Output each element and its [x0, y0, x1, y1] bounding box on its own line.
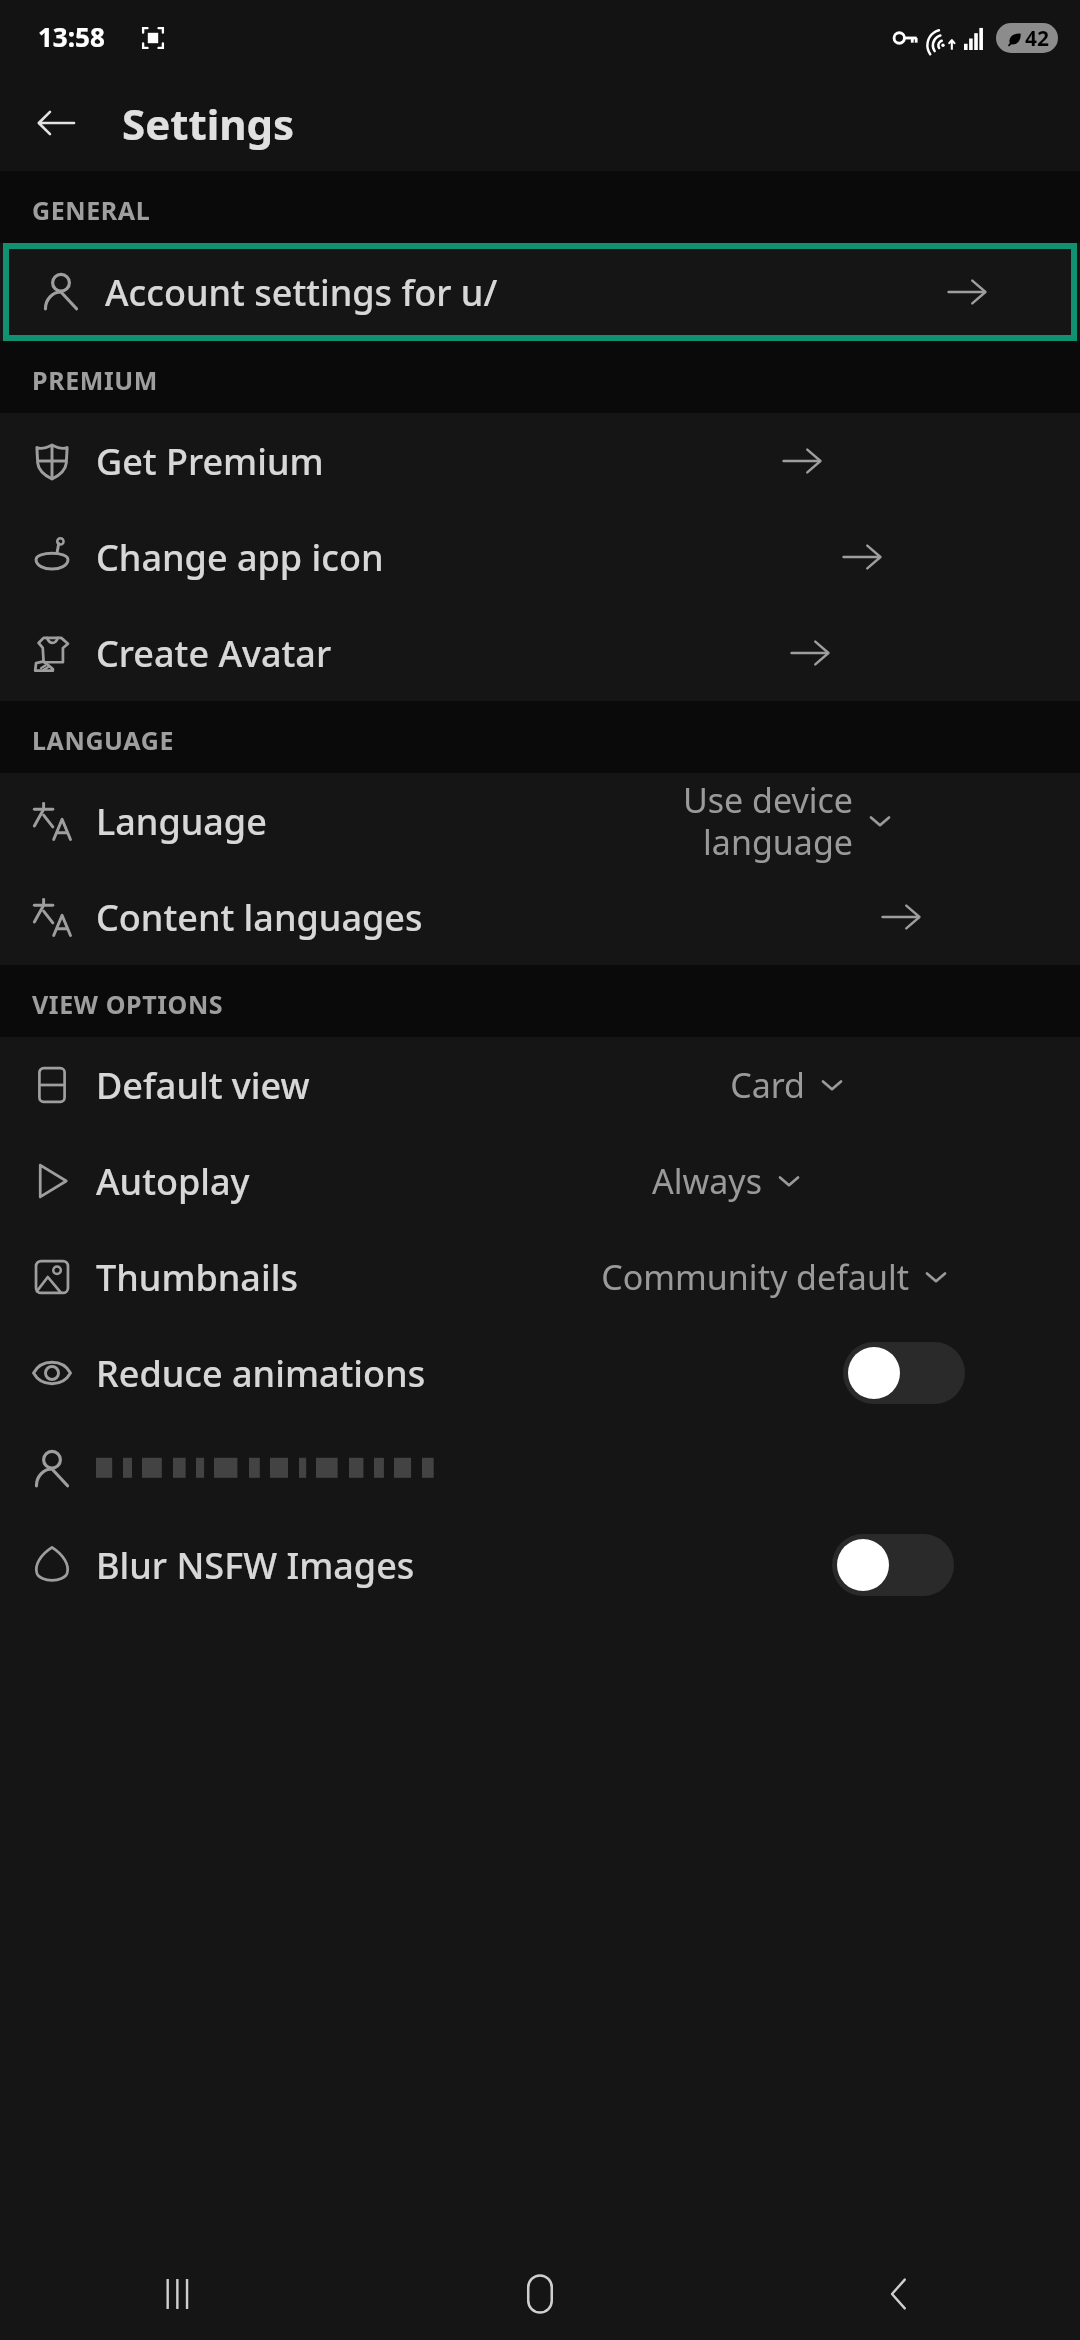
staticText: 42: [1025, 24, 1050, 53]
staticText: Content languages: [96, 893, 423, 942]
staticText: Reduce animations: [96, 1349, 426, 1398]
staticText: Autoplay: [96, 1157, 250, 1206]
staticText: Default view: [96, 1061, 310, 1110]
staticText: VIEW OPTIONS: [32, 987, 224, 1021]
button[interactable]: Get Premium: [0, 413, 1080, 509]
button[interactable]: Content languages: [0, 869, 1080, 965]
button[interactable]: Back: [26, 93, 86, 153]
button[interactable]: Home: [495, 2249, 585, 2339]
staticText: Language: [96, 797, 267, 846]
staticText: Use device language: [595, 777, 853, 865]
button[interactable]: Account settings for u/: [9, 249, 1071, 335]
button[interactable]: Recents: [135, 2249, 225, 2339]
button[interactable]: Toggle: [843, 1342, 965, 1404]
staticText: PREMIUM: [32, 363, 158, 397]
button[interactable]: Language: [0, 773, 1080, 869]
staticText: Settings: [122, 95, 295, 152]
button[interactable]: Reduce animations: [0, 1325, 1080, 1421]
button[interactable]: Autoplay: [0, 1133, 1080, 1229]
staticText: Thumbnails: [96, 1253, 298, 1302]
button[interactable]: Default view: [0, 1037, 1080, 1133]
staticText: Community default: [601, 1254, 909, 1300]
button[interactable]: Blur NSFW Images: [0, 1517, 1080, 1613]
staticText: Blur NSFW Images: [96, 1541, 415, 1590]
button[interactable]: Back: [855, 2249, 945, 2339]
button[interactable]: Create Avatar: [0, 605, 1080, 701]
staticText: Always: [652, 1158, 762, 1204]
staticText: Change app icon: [96, 533, 384, 582]
button[interactable]: Toggle: [832, 1534, 954, 1596]
button[interactable]: [0, 1421, 1080, 1517]
staticText: GENERAL: [32, 193, 151, 227]
staticText: Get Premium: [96, 437, 324, 486]
button[interactable]: Thumbnails: [0, 1229, 1080, 1325]
staticText: Create Avatar: [96, 629, 332, 678]
staticText: Card: [730, 1062, 805, 1108]
staticText: Account settings for u/: [105, 268, 498, 317]
staticText: LANGUAGE: [32, 723, 175, 757]
button[interactable]: Change app icon: [0, 509, 1080, 605]
staticText: 13:58: [38, 19, 105, 54]
